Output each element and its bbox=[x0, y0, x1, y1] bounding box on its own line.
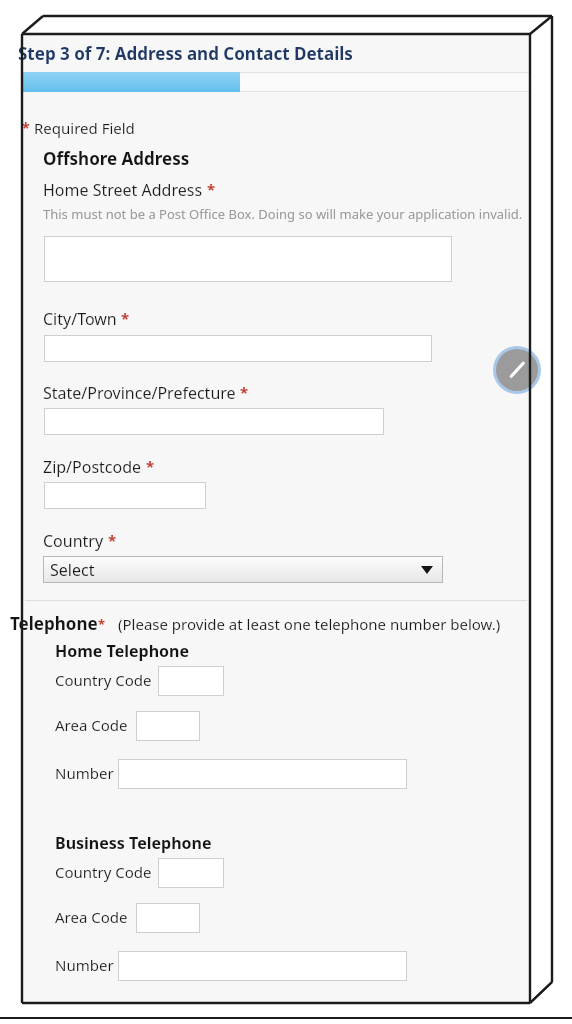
staticText: Country Code bbox=[55, 670, 152, 690]
staticText: Offshore Address bbox=[43, 147, 190, 170]
staticText: City/Town bbox=[43, 308, 117, 330]
button[interactable] bbox=[136, 903, 200, 933]
staticText: Zip/Postcode bbox=[43, 456, 142, 478]
staticText: Select bbox=[50, 559, 95, 581]
staticText: * bbox=[146, 456, 155, 476]
button[interactable] bbox=[44, 236, 452, 282]
button[interactable]: Select bbox=[43, 556, 443, 583]
button[interactable] bbox=[44, 482, 206, 509]
staticText: Telephone bbox=[10, 612, 98, 635]
button[interactable] bbox=[44, 408, 384, 435]
button[interactable] bbox=[118, 759, 407, 789]
staticText: * bbox=[22, 118, 30, 137]
staticText: (Please provide at least one telephone n… bbox=[118, 614, 501, 634]
staticText: * bbox=[108, 530, 117, 550]
staticText: Area Code bbox=[55, 907, 128, 927]
staticText: This must not be a Post Office Box. Doin… bbox=[43, 205, 523, 223]
button[interactable] bbox=[118, 951, 407, 981]
staticText: State/Province/Prefecture bbox=[43, 382, 236, 404]
button[interactable] bbox=[136, 711, 200, 741]
staticText: Home Street Address bbox=[43, 179, 203, 201]
staticText: * bbox=[121, 308, 130, 328]
staticText: Number bbox=[55, 763, 114, 783]
staticText: Business Telephone bbox=[55, 832, 212, 854]
staticText: Area Code bbox=[55, 715, 128, 735]
staticText: Country Code bbox=[55, 862, 152, 882]
staticText: Country bbox=[43, 530, 104, 552]
staticText: Home Telephone bbox=[55, 640, 190, 662]
button[interactable] bbox=[44, 335, 432, 362]
button[interactable] bbox=[158, 858, 224, 888]
staticText: Required Field bbox=[34, 118, 135, 138]
button[interactable]: Edit bbox=[493, 346, 541, 394]
button[interactable] bbox=[158, 666, 224, 696]
staticText: Step 3 of 7: Address and Contact Details bbox=[18, 42, 353, 65]
staticText: * bbox=[207, 179, 216, 199]
staticText: * bbox=[240, 382, 249, 402]
staticText: Number bbox=[55, 955, 114, 975]
staticText: * bbox=[98, 615, 106, 633]
